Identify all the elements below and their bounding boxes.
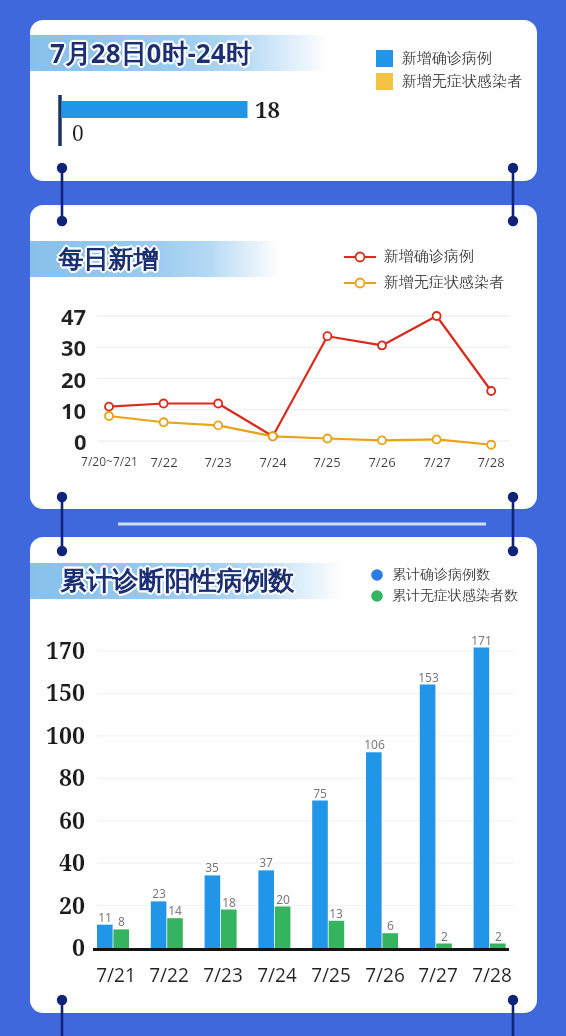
staticText: 18 <box>255 94 280 124</box>
staticText: 0 <box>72 931 85 962</box>
staticText: 累计诊断阳性病例数 <box>59 564 293 597</box>
staticText: 累计诊断阳性病例数 <box>58 565 292 598</box>
staticText: 75 <box>313 785 327 801</box>
staticText: 累计诊断阳性病例数 <box>60 565 294 598</box>
staticText: 47 <box>61 301 87 331</box>
staticText: 7/21 <box>96 962 136 988</box>
staticText: 30 <box>61 332 87 362</box>
staticText: 171 <box>471 632 492 648</box>
staticText: 153 <box>418 669 439 685</box>
staticText: 新增确诊病例 <box>402 49 492 68</box>
staticText: 150 <box>46 676 85 707</box>
staticText: 14 <box>168 902 182 918</box>
staticText: 7/20~7/21 <box>81 453 138 469</box>
staticText: 7/26 <box>365 962 405 988</box>
staticText: 18 <box>222 894 236 910</box>
staticText: 11 <box>98 909 112 925</box>
staticText: 7/23 <box>204 453 232 471</box>
button[interactable]: 累计诊断阳性病例数 <box>30 537 537 1013</box>
staticText: 20 <box>61 364 87 394</box>
staticText: 新增无症状感染者 <box>402 72 522 91</box>
staticText: 7/23 <box>203 962 243 988</box>
staticText: 每日新增 <box>57 245 157 276</box>
staticText: 累计诊断阳性病例数 <box>59 566 293 599</box>
staticText: 20 <box>59 889 85 920</box>
staticText: 每日新增 <box>58 244 158 275</box>
staticText: 累计诊断阳性病例数 <box>61 566 295 599</box>
button[interactable]: 7月28日0时-24时 <box>30 20 537 181</box>
staticText: 8 <box>118 913 125 929</box>
staticText: 累计诊断阳性病例数 <box>61 564 295 597</box>
staticText: 0 <box>74 426 87 456</box>
staticText: 7/22 <box>150 453 178 471</box>
staticText: 每日新增 <box>57 243 157 274</box>
staticText: 7/27 <box>418 962 458 988</box>
staticText: 60 <box>59 804 85 835</box>
staticText: 每日新增 <box>58 246 158 277</box>
staticText: 累计诊断阳性病例数 <box>62 565 296 598</box>
staticText: 80 <box>59 761 85 792</box>
staticText: 37 <box>259 854 273 870</box>
staticText: 7/26 <box>368 453 396 471</box>
staticText: 13 <box>329 905 343 921</box>
staticText: 累计诊断阳性病例数 <box>60 563 294 596</box>
staticText: 7/24 <box>257 962 297 988</box>
staticText: 每日新增 <box>58 242 158 273</box>
staticText: 每日新增 <box>59 243 159 274</box>
staticText: 累计诊断阳性病例数 <box>60 567 294 600</box>
staticText: 累计无症状感染者数 <box>392 587 518 605</box>
staticText: 7月28日0时-24时 <box>51 36 253 72</box>
staticText: 新增确诊病例 <box>384 247 474 266</box>
staticText: 7/28 <box>472 962 512 988</box>
staticText: 7/24 <box>259 453 287 471</box>
staticText: 7/25 <box>313 453 341 471</box>
staticText: 20 <box>276 891 290 907</box>
staticText: 7/27 <box>423 453 451 471</box>
staticText: 0 <box>72 119 84 148</box>
staticText: 7月28日0时-24时 <box>48 35 250 71</box>
staticText: 7月28日0时-24时 <box>49 34 251 70</box>
staticText: 7/22 <box>149 962 189 988</box>
staticText: 7月28日0时-24时 <box>51 34 253 70</box>
staticText: 10 <box>61 395 87 425</box>
staticText: 40 <box>59 846 85 877</box>
staticText: 7月28日0时-24时 <box>50 33 252 69</box>
staticText: 23 <box>152 885 166 901</box>
staticText: 每日新增 <box>59 245 159 276</box>
staticText: 累计确诊病例数 <box>392 566 490 584</box>
staticText: 7月28日0时-24时 <box>50 37 252 73</box>
staticText: 170 <box>46 634 85 665</box>
staticText: 每日新增 <box>60 244 160 275</box>
staticText: 7/25 <box>311 962 351 988</box>
button[interactable]: 每日新增 <box>30 205 537 509</box>
staticText: 新增无症状感染者 <box>384 273 504 292</box>
staticText: 7月28日0时-24时 <box>52 35 254 71</box>
staticText: 7月28日0时-24时 <box>50 35 252 71</box>
staticText: 100 <box>46 719 85 750</box>
staticText: 106 <box>364 736 385 752</box>
staticText: 35 <box>205 859 219 875</box>
staticText: 每日新增 <box>56 244 156 275</box>
staticText: 7月28日0时-24时 <box>49 36 251 72</box>
staticText: 2 <box>495 928 502 944</box>
staticText: 6 <box>387 917 394 933</box>
staticText: 2 <box>441 928 448 944</box>
staticText: 7/28 <box>477 453 505 471</box>
